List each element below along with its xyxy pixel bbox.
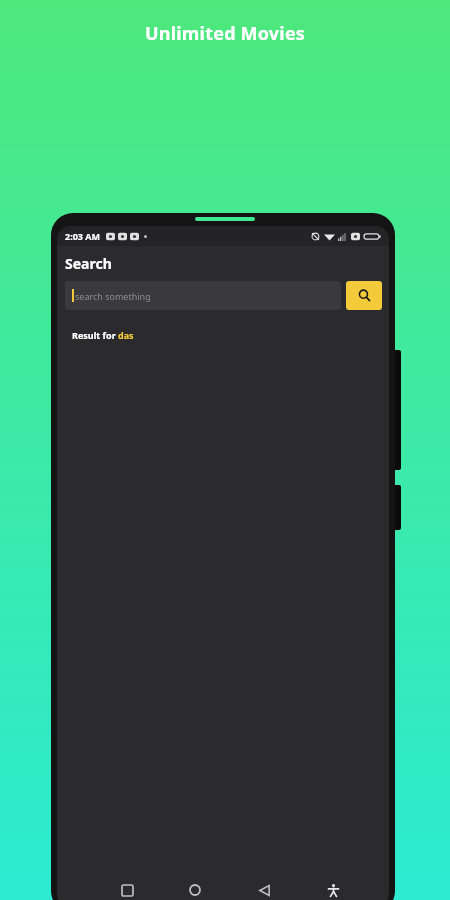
staticText: Result for das — [72, 329, 134, 341]
button[interactable]: Back — [251, 877, 277, 900]
button[interactable]: Recents — [114, 877, 140, 900]
staticText: search something — [75, 290, 151, 302]
button[interactable]: Accessibility — [320, 877, 346, 900]
staticText: Unlimited Movies — [145, 21, 306, 46]
staticText: 2:03 AM — [65, 230, 101, 242]
button[interactable]: search something — [65, 281, 341, 310]
staticText: Search — [65, 254, 112, 273]
button[interactable]: Home — [182, 877, 208, 900]
button[interactable]: Search — [346, 281, 382, 310]
